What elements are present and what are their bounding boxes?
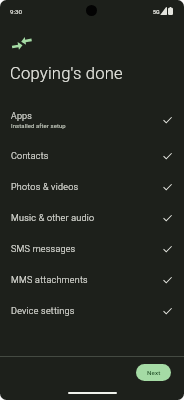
- button[interactable]: Photos & videos: [0, 172, 184, 203]
- staticText: 9:30: [10, 8, 22, 15]
- other: Data transfer: [10, 33, 34, 57]
- button[interactable]: SMS messages: [0, 234, 184, 265]
- staticText: 5G: [153, 9, 160, 15]
- button[interactable]: Next: [136, 364, 171, 381]
- button[interactable]: Music & other audio: [0, 203, 184, 234]
- staticText: Next: [147, 369, 161, 376]
- staticText: Device settings: [11, 306, 75, 317]
- staticText: Apps: [11, 111, 33, 122]
- staticText: Copying's done: [10, 64, 123, 83]
- staticText: MMS attachments: [11, 275, 88, 286]
- button[interactable]: Contacts: [0, 141, 184, 172]
- staticText: Contacts: [11, 151, 49, 162]
- button[interactable]: MMS attachments: [0, 265, 184, 296]
- button[interactable]: Apps: [0, 100, 184, 141]
- staticText: Photos & videos: [11, 182, 79, 193]
- staticText: SMS messages: [11, 244, 76, 255]
- button[interactable]: Device settings: [0, 296, 184, 327]
- staticText: Installed after setup: [11, 123, 66, 130]
- staticText: Music & other audio: [11, 213, 95, 224]
